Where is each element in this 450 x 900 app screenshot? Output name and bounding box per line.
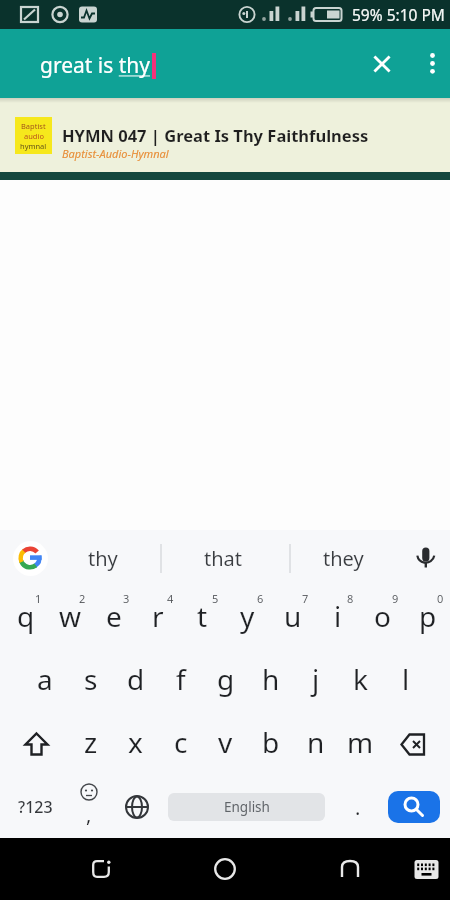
button[interactable]: ?123 <box>10 785 60 829</box>
staticText: i <box>334 597 342 635</box>
staticText: 1 <box>35 591 42 606</box>
button[interactable]: c <box>158 713 203 776</box>
button[interactable]: x <box>113 713 158 776</box>
staticText: k <box>353 660 368 698</box>
button[interactable]: j <box>293 650 338 713</box>
staticText: 2 <box>79 591 86 606</box>
button[interactable]: z <box>68 713 113 776</box>
staticText: m <box>347 723 374 761</box>
staticText: 4 <box>167 591 174 606</box>
staticText: . <box>355 794 361 821</box>
staticText: Baptist <box>21 121 46 131</box>
staticText: e <box>106 597 122 635</box>
staticText: w <box>59 597 82 635</box>
button[interactable]: English <box>168 793 325 821</box>
staticText: 0 <box>437 591 444 606</box>
staticText: 5 <box>212 591 219 606</box>
button[interactable]: Baptist <box>0 98 450 172</box>
button[interactable]: e <box>92 587 136 650</box>
button[interactable]: that <box>173 530 273 587</box>
staticText: hymnal <box>20 141 47 151</box>
button[interactable]: i <box>315 587 360 650</box>
staticText: , <box>86 801 92 828</box>
staticText: great is thy <box>40 51 151 80</box>
staticText: 6 <box>257 591 264 606</box>
staticText: 7 <box>302 591 309 606</box>
button[interactable] <box>383 713 444 776</box>
staticText: HYMN 047 | Great Is Thy Faithfulness <box>62 124 369 146</box>
staticText: o <box>374 597 391 635</box>
button[interactable]: n <box>293 713 338 776</box>
staticText: l <box>402 660 410 698</box>
button[interactable]: v <box>203 713 248 776</box>
staticText: f <box>176 660 186 698</box>
staticText: b <box>262 723 280 761</box>
staticText: English <box>224 798 270 816</box>
staticText: n <box>307 723 325 761</box>
staticText: y <box>240 597 255 635</box>
button[interactable]: . <box>342 783 374 831</box>
staticText: that <box>204 545 243 572</box>
staticText: p <box>419 597 437 635</box>
button[interactable]: u <box>270 587 315 650</box>
staticText: a <box>37 660 53 698</box>
button[interactable]: a <box>22 650 68 713</box>
button[interactable] <box>118 783 155 831</box>
button[interactable]: g <box>203 650 248 713</box>
staticText: j <box>312 660 320 698</box>
button[interactable] <box>410 853 442 885</box>
button[interactable]: m <box>338 713 383 776</box>
button[interactable] <box>5 713 68 776</box>
button[interactable]: l <box>383 650 428 713</box>
staticText: g <box>217 660 235 698</box>
button[interactable]: s <box>68 650 113 713</box>
staticText: 9 <box>392 591 399 606</box>
staticText: 8 <box>347 591 354 606</box>
staticText: u <box>284 597 302 635</box>
staticText: q <box>17 597 35 635</box>
button[interactable] <box>412 545 440 573</box>
button[interactable] <box>83 851 119 887</box>
staticText: thy <box>88 545 118 572</box>
button[interactable]: y <box>225 587 270 650</box>
button[interactable]: thy <box>53 530 153 587</box>
button[interactable] <box>419 50 446 77</box>
button[interactable]: q <box>4 587 48 650</box>
staticText: z <box>84 723 98 761</box>
staticText: audio <box>24 131 44 141</box>
button[interactable]: p <box>405 587 450 650</box>
button[interactable]: h <box>248 650 293 713</box>
staticText: r <box>152 597 164 635</box>
staticText: x <box>128 723 143 761</box>
staticText: 59% 5:10 PM <box>352 4 445 25</box>
staticText: s <box>84 660 98 698</box>
button[interactable]: , <box>71 783 107 831</box>
staticText: d <box>127 660 145 698</box>
button[interactable]: they <box>293 530 393 587</box>
button[interactable]: t <box>180 587 225 650</box>
staticText: ?123 <box>18 796 53 818</box>
button[interactable] <box>388 791 440 823</box>
button[interactable] <box>13 541 48 576</box>
button[interactable] <box>365 47 399 81</box>
button[interactable]: r <box>136 587 180 650</box>
button[interactable] <box>332 851 368 887</box>
staticText: h <box>262 660 280 698</box>
button[interactable]: o <box>360 587 405 650</box>
staticText: v <box>218 723 233 761</box>
button[interactable]: w <box>48 587 92 650</box>
button[interactable]: b <box>248 713 293 776</box>
button[interactable]: f <box>158 650 203 713</box>
staticText: Baptist-Audio-Hymnal <box>62 146 169 161</box>
staticText: they <box>323 545 364 572</box>
staticText: c <box>174 723 188 761</box>
button[interactable] <box>207 851 243 887</box>
button[interactable]: k <box>338 650 383 713</box>
staticText: t <box>197 597 208 635</box>
button[interactable]: d <box>113 650 158 713</box>
staticText: 3 <box>123 591 130 606</box>
